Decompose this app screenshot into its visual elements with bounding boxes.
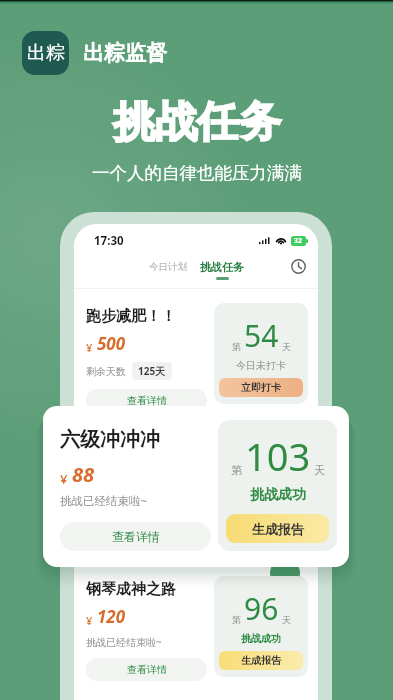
staticText: 出粽 — [27, 41, 65, 65]
staticText: 今日计划 — [149, 261, 187, 273]
button[interactable]: History — [291, 259, 306, 274]
staticText: 第 — [232, 614, 241, 625]
staticText: 今日未打卡 — [236, 359, 286, 372]
staticText: 挑战任务 — [200, 260, 244, 274]
staticText: ¥ — [60, 470, 68, 488]
button[interactable]: Add challenge — [270, 558, 300, 588]
staticText: ¥ — [86, 340, 93, 355]
staticText: 挑战成功 — [241, 632, 281, 645]
button[interactable]: 立即打卡 — [219, 378, 303, 397]
staticText: 出粽监督 — [83, 40, 167, 66]
button[interactable]: 挑战任务 — [195, 260, 249, 280]
staticText: 查看详情 — [127, 394, 167, 407]
staticText: 挑战已经结束啦~ — [60, 493, 148, 509]
staticText: 103 — [245, 430, 311, 482]
staticText: 17:30 — [94, 233, 124, 249]
staticText: 立即打卡 — [241, 381, 281, 394]
staticText: 120 — [97, 605, 126, 628]
staticText: 生成报告 — [252, 521, 304, 537]
staticText: 天 — [282, 614, 291, 625]
staticText: 第 — [232, 341, 241, 352]
staticText: 一个人的自律也能压力满满 — [92, 162, 302, 184]
staticText: 挑战已经结束啦~ — [86, 635, 162, 649]
staticText: 查看详情 — [127, 663, 167, 676]
staticText: 挑战任务 — [113, 96, 281, 149]
button[interactable]: App logo — [22, 31, 69, 75]
button[interactable]: 查看详情 — [86, 658, 207, 681]
button[interactable]: 查看详情 — [60, 522, 211, 551]
staticText: 天 — [282, 341, 291, 352]
staticText: 挑战成功 — [250, 486, 306, 504]
staticText: 查看详情 — [112, 529, 160, 544]
staticText: 六级冲冲冲 — [60, 427, 160, 452]
staticText: 32 — [294, 236, 303, 246]
staticText: 54 — [244, 315, 279, 356]
staticText: 96 — [244, 588, 279, 629]
staticText: 剩余天数 — [86, 365, 126, 378]
staticText: 125天 — [138, 364, 166, 378]
staticText: 88 — [72, 461, 95, 488]
staticText: 500 — [97, 332, 126, 355]
staticText: 生成报告 — [241, 654, 281, 667]
button[interactable]: 生成报告 — [219, 651, 303, 670]
staticText: 跑步减肥！！ — [86, 307, 176, 326]
staticText: 天 — [314, 463, 325, 477]
staticText: 第 — [231, 463, 242, 477]
staticText: 钢琴成神之路 — [86, 580, 176, 599]
button[interactable]: 生成报告 — [226, 514, 329, 543]
button[interactable]: 今日计划 — [144, 260, 192, 275]
staticText: ¥ — [86, 613, 93, 628]
button[interactable]: 查看详情 — [86, 389, 207, 412]
